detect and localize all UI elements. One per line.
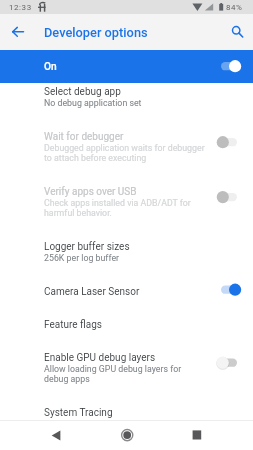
staticText: Feature flags xyxy=(44,319,102,331)
button[interactable]: Verify apps over USB xyxy=(0,183,253,238)
button[interactable]: Recent apps xyxy=(184,422,210,448)
button[interactable]: Back xyxy=(43,422,69,448)
button[interactable]: Wait for debugger xyxy=(0,128,253,183)
button[interactable]: System Tracing xyxy=(0,404,253,430)
button[interactable]: Select debug app xyxy=(0,83,253,128)
staticText: 84% xyxy=(226,3,243,12)
staticText: Logger buffer sizes xyxy=(44,241,130,253)
staticText: No debug application set xyxy=(44,98,142,108)
button[interactable]: Home xyxy=(114,422,140,448)
staticText: System Tracing xyxy=(44,407,113,419)
button[interactable]: On xyxy=(0,50,253,83)
staticText: Camera Laser Sensor xyxy=(44,286,140,298)
staticText: Debugged application waits for debugger … xyxy=(44,143,205,163)
staticText: Enable GPU debug layers xyxy=(44,352,156,364)
button[interactable]: Logger buffer sizes xyxy=(0,238,253,283)
button[interactable]: Enable GPU debug layers xyxy=(0,349,253,404)
button[interactable]: Navigate up xyxy=(6,18,30,42)
button[interactable]: Camera Laser Sensor xyxy=(0,283,253,316)
staticText: Verify apps over USB xyxy=(44,186,137,198)
staticText: 256K per log buffer xyxy=(44,253,120,263)
staticText: Wait for debugger xyxy=(44,131,124,143)
staticText: 12:33 xyxy=(9,3,32,12)
staticText: Check apps installed via ADB/ADT for har… xyxy=(44,198,191,218)
staticText: On xyxy=(44,61,57,73)
button[interactable]: Feature flags xyxy=(0,316,253,349)
button[interactable]: Search xyxy=(224,18,248,42)
staticText: Select debug app xyxy=(44,86,121,98)
staticText: Developer options xyxy=(44,25,148,40)
staticText: Allow loading GPU debug layers for debug… xyxy=(44,364,182,384)
